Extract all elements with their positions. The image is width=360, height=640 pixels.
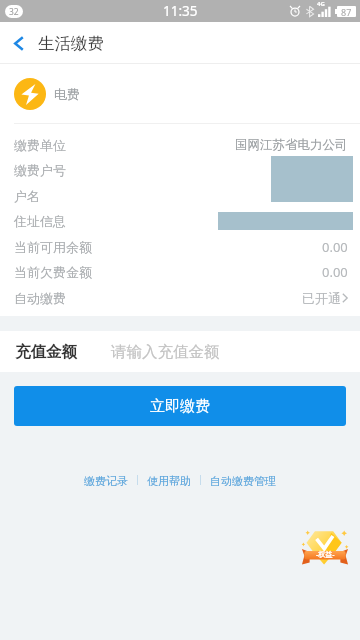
button[interactable]: 立即缴费 <box>14 386 346 426</box>
staticText: 0.00 <box>322 263 348 281</box>
staticText: 自动缴费管理 <box>210 474 276 486</box>
staticText: 缴费户号 <box>14 162 66 178</box>
staticText: 电费 <box>54 86 80 102</box>
staticText: 生活缴费 <box>38 33 104 54</box>
button[interactable]: 自动缴费管理 <box>201 471 285 489</box>
staticText: 32 <box>9 6 19 18</box>
staticText: 缴费记录 <box>84 474 128 486</box>
staticText: 已开通 <box>302 290 341 306</box>
staticText: -权益- <box>316 550 335 559</box>
staticText: 11:35 <box>163 2 198 20</box>
staticText: 缴费单位 <box>14 137 66 153</box>
staticText: 住址信息 <box>14 213 66 229</box>
button[interactable]: 自动缴费 <box>0 285 360 310</box>
button[interactable]: 缴费记录 <box>75 471 137 489</box>
staticText: 户名 <box>14 188 40 204</box>
staticText: 充值金额 <box>15 342 77 362</box>
staticText: 国网江苏省电力公司 <box>235 137 348 153</box>
staticText: 当前可用余额 <box>14 239 92 255</box>
button[interactable]: 使用帮助 <box>138 471 200 489</box>
staticText: 立即缴费 <box>150 397 210 416</box>
staticText: 87 <box>341 6 352 17</box>
staticText: 4G <box>317 0 325 8</box>
staticText: 自动缴费 <box>14 290 66 306</box>
staticText: 请输入充值金额 <box>111 342 220 362</box>
staticText: 当前欠费金额 <box>14 264 92 280</box>
staticText: 0.00 <box>322 238 348 256</box>
button[interactable]: Back <box>3 22 35 64</box>
staticText: 使用帮助 <box>147 474 191 486</box>
